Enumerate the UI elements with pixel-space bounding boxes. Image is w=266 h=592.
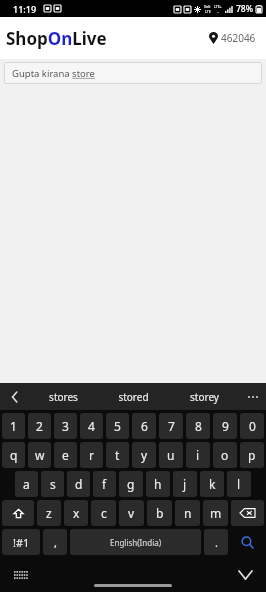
staticText: 0 (249, 418, 256, 434)
button[interactable]: 2 (28, 413, 51, 439)
button[interactable]: 9 (213, 413, 237, 439)
staticText: LTE+ (214, 4, 222, 9)
staticText: q (10, 447, 18, 463)
button[interactable]: n (175, 500, 200, 526)
staticText: 9 (222, 418, 229, 434)
button[interactable]: storey (169, 383, 240, 410)
staticText: stored (118, 390, 149, 404)
staticText: 462046 (221, 31, 256, 45)
button[interactable]: f (93, 471, 116, 497)
button[interactable]: s (41, 471, 64, 497)
button[interactable]: h (146, 471, 170, 497)
button[interactable]: Hide keyboard (234, 564, 256, 586)
button[interactable]: 5 (106, 413, 129, 439)
button[interactable]: More options (240, 384, 266, 410)
button[interactable]: e (54, 442, 77, 468)
button[interactable]: , (43, 529, 67, 555)
staticText: 7 (168, 418, 175, 434)
staticText: 5 (114, 418, 121, 434)
button[interactable]: Search (231, 529, 264, 555)
staticText: j (183, 476, 187, 492)
staticText: y (141, 447, 148, 463)
button[interactable]: stored (98, 383, 169, 410)
button[interactable]: x (64, 500, 88, 526)
button[interactable]: d (67, 471, 90, 497)
staticText: m (210, 505, 222, 521)
button[interactable]: Shift (2, 500, 34, 526)
staticText: k (209, 476, 216, 492)
staticText: 1 (10, 418, 17, 434)
staticText: ShopOnLive (6, 27, 107, 50)
staticText: u (167, 447, 175, 463)
button[interactable]: v (119, 500, 144, 526)
staticText: Gupta kirana store (12, 67, 95, 80)
staticText: b (156, 505, 164, 521)
staticText: !#1 (13, 535, 30, 550)
button[interactable]: q (2, 442, 25, 468)
button[interactable]: 6 (132, 413, 156, 439)
button[interactable]: b (147, 500, 172, 526)
staticText: l (237, 476, 241, 492)
button[interactable]: l (227, 471, 251, 497)
button[interactable]: 0 (240, 413, 264, 439)
button[interactable]: m (203, 500, 228, 526)
staticText: 8 (195, 418, 202, 434)
button[interactable]: w (28, 442, 51, 468)
button[interactable]: Backspace (231, 500, 264, 526)
staticText: stores (49, 390, 78, 404)
staticText: f (102, 476, 107, 492)
staticText: v (128, 505, 135, 521)
button[interactable]: t (106, 442, 129, 468)
staticText: a (23, 476, 30, 492)
button[interactable]: Keyboard settings (10, 564, 32, 586)
staticText: i (196, 447, 200, 463)
button[interactable]: 8 (186, 413, 210, 439)
staticText: r (89, 447, 94, 463)
button[interactable]: 7 (159, 413, 183, 439)
button[interactable]: a (15, 471, 38, 497)
button[interactable]: 462046 (207, 27, 258, 49)
staticText: . (215, 535, 218, 550)
button[interactable]: stores (28, 383, 98, 410)
staticText: e (62, 447, 69, 463)
staticText: o (221, 447, 229, 463)
button[interactable]: z (37, 500, 61, 526)
button[interactable]: u (159, 442, 183, 468)
button[interactable]: p (240, 442, 264, 468)
button[interactable]: English(India) (70, 529, 201, 555)
staticText: 4 (88, 418, 95, 434)
staticText: 6 (141, 418, 148, 434)
button[interactable]: k (200, 471, 224, 497)
staticText: h (154, 476, 162, 492)
button[interactable]: y (132, 442, 156, 468)
button[interactable]: i (186, 442, 210, 468)
staticText: 2 (36, 418, 43, 434)
button[interactable]: j (173, 471, 197, 497)
staticText: 3 (62, 418, 69, 434)
staticText: g (127, 476, 135, 492)
button[interactable]: 1 (2, 413, 25, 439)
staticText: x (73, 505, 80, 521)
staticText: n (184, 505, 192, 521)
button[interactable]: Previous suggestions (0, 383, 30, 410)
staticText: w (35, 447, 45, 463)
button[interactable]: c (91, 500, 116, 526)
staticText: Volt (204, 4, 211, 9)
staticText: s (50, 476, 56, 492)
staticText: storey (190, 390, 219, 404)
staticText: 11:19 (13, 3, 37, 15)
button[interactable]: Gupta kirana store (4, 62, 262, 84)
staticText: d (75, 476, 83, 492)
button[interactable]: . (204, 529, 228, 555)
button[interactable]: g (119, 471, 143, 497)
staticText: , (54, 535, 57, 550)
button[interactable]: !#1 (2, 529, 40, 555)
staticText: p (248, 447, 256, 463)
button[interactable]: r (80, 442, 103, 468)
button[interactable]: 3 (54, 413, 77, 439)
staticText: LTE (205, 9, 211, 14)
staticText: English(India) (110, 537, 162, 548)
button[interactable]: o (213, 442, 237, 468)
staticText: z (46, 505, 52, 521)
button[interactable]: 4 (80, 413, 103, 439)
